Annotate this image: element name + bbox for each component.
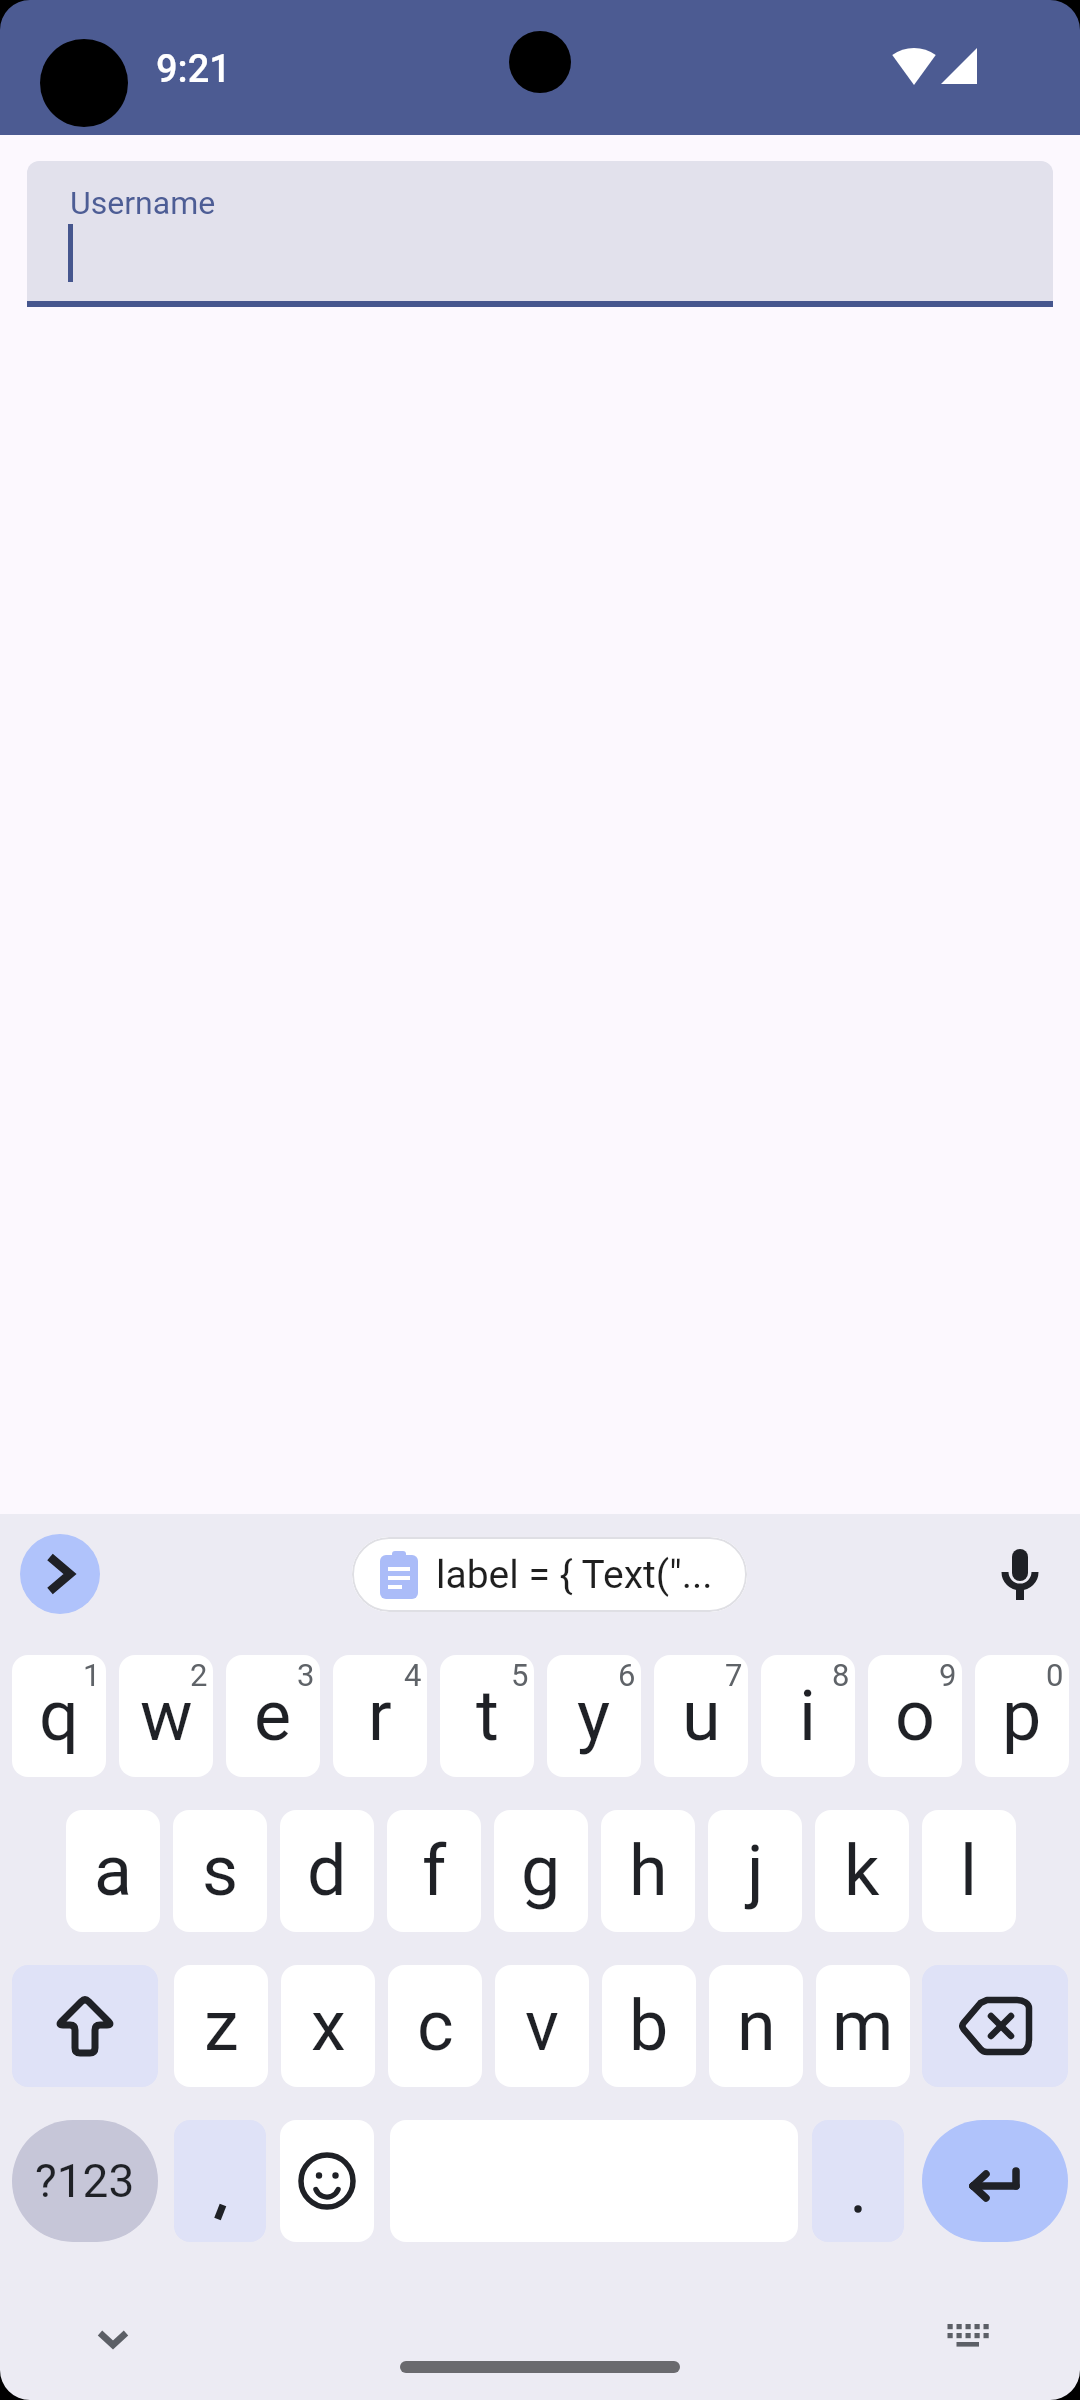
staticText: 6	[618, 1657, 636, 1693]
button[interactable]	[174, 2120, 266, 2242]
staticText: y	[577, 1675, 611, 1757]
button[interactable]	[85, 2317, 141, 2361]
staticText: i	[799, 1675, 817, 1757]
button[interactable]: p	[975, 1655, 1069, 1777]
button[interactable]: w	[119, 1655, 213, 1777]
staticText: k	[844, 1830, 880, 1912]
button[interactable]: k	[815, 1810, 909, 1932]
staticText: h	[629, 1830, 668, 1912]
staticText: label = { Text("...	[436, 1552, 713, 1598]
staticText: r	[368, 1675, 392, 1757]
staticText: 4	[404, 1657, 422, 1693]
button[interactable]: i	[761, 1655, 855, 1777]
staticText: g	[521, 1830, 561, 1912]
button[interactable]: u	[654, 1655, 748, 1777]
staticText: 3	[297, 1657, 315, 1693]
staticText: 9	[939, 1657, 957, 1693]
button[interactable]: j	[708, 1810, 802, 1932]
staticText: 5	[511, 1657, 529, 1693]
staticText: o	[895, 1675, 935, 1757]
button[interactable]	[922, 2120, 1068, 2242]
staticText: f	[422, 1830, 447, 1912]
button[interactable]: q	[12, 1655, 106, 1777]
staticText: t	[476, 1675, 499, 1757]
staticText: Username	[70, 184, 216, 222]
button[interactable]	[280, 2120, 374, 2242]
button[interactable]	[933, 2304, 1003, 2368]
button[interactable]: t	[440, 1655, 534, 1777]
staticText: w	[140, 1675, 193, 1757]
button[interactable]: d	[280, 1810, 374, 1932]
staticText: z	[204, 1985, 239, 2067]
button[interactable]: n	[709, 1965, 803, 2087]
staticText: 1	[83, 1657, 101, 1693]
button[interactable]: Username	[27, 161, 1053, 307]
staticText: s	[202, 1830, 239, 1912]
button[interactable]: v	[495, 1965, 589, 2087]
button[interactable]: o	[868, 1655, 962, 1777]
staticText: ?123	[35, 2154, 135, 2208]
staticText: 8	[832, 1657, 850, 1693]
button[interactable]	[812, 2120, 904, 2242]
button[interactable]: g	[494, 1810, 588, 1932]
button[interactable]: ?123	[12, 2120, 158, 2242]
staticText: 9:21	[156, 47, 231, 92]
button[interactable]: l	[922, 1810, 1016, 1932]
staticText: b	[629, 1985, 669, 2067]
button[interactable]	[400, 2361, 680, 2373]
staticText: c	[417, 1985, 454, 2067]
button[interactable]	[922, 1965, 1068, 2087]
staticText: 0	[1046, 1657, 1064, 1693]
staticText: q	[39, 1675, 79, 1757]
staticText: p	[1002, 1675, 1042, 1757]
button[interactable]: e	[226, 1655, 320, 1777]
button[interactable]: a	[66, 1810, 160, 1932]
staticText: m	[832, 1985, 894, 2067]
staticText: e	[254, 1675, 292, 1757]
staticText: 2	[190, 1657, 208, 1693]
staticText: v	[525, 1985, 559, 2067]
button[interactable]	[12, 1965, 158, 2087]
staticText: x	[311, 1985, 346, 2067]
button[interactable]: x	[281, 1965, 375, 2087]
staticText: d	[307, 1830, 347, 1912]
staticText: 7	[725, 1657, 743, 1693]
button[interactable]: h	[601, 1810, 695, 1932]
button[interactable]	[985, 1530, 1055, 1618]
button[interactable]: m	[816, 1965, 910, 2087]
staticText: a	[94, 1830, 133, 1912]
button[interactable]: r	[333, 1655, 427, 1777]
staticText: n	[737, 1985, 776, 2067]
button[interactable]: y	[547, 1655, 641, 1777]
button[interactable]: s	[173, 1810, 267, 1932]
button[interactable]: f	[387, 1810, 481, 1932]
button[interactable]: c	[388, 1965, 482, 2087]
staticText: l	[960, 1830, 978, 1912]
button[interactable]: label = { Text("...	[352, 1537, 747, 1612]
button[interactable]: b	[602, 1965, 696, 2087]
button[interactable]: z	[174, 1965, 268, 2087]
staticText: u	[682, 1675, 721, 1757]
staticText: j	[747, 1830, 764, 1912]
button[interactable]	[20, 1534, 100, 1614]
